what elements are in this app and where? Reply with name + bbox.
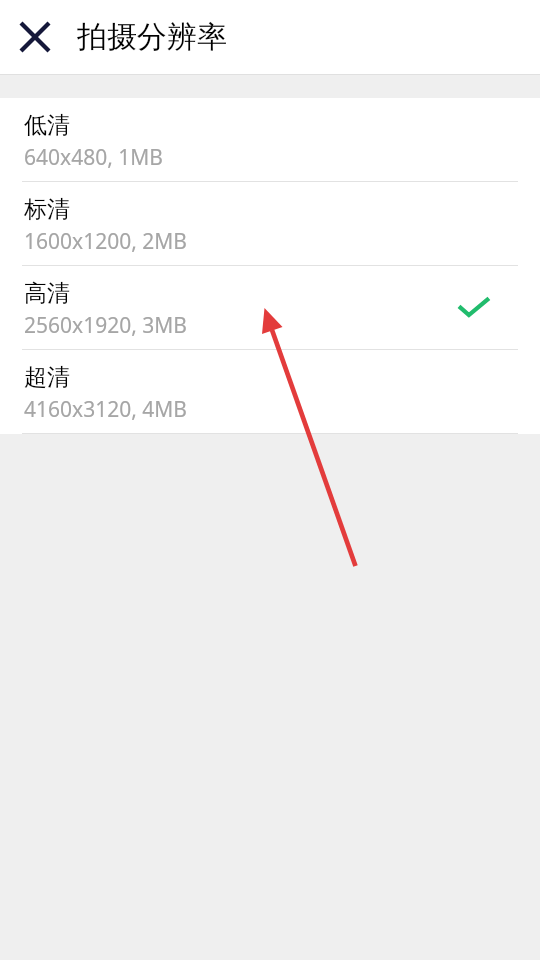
staticText: 640x480, 1MB — [24, 143, 163, 172]
staticText: 标清 — [24, 195, 70, 224]
button[interactable]: 标清 — [0, 182, 540, 265]
button[interactable]: 低清 — [0, 98, 540, 181]
staticText: 高清 — [24, 279, 70, 308]
staticText: 低清 — [24, 111, 70, 140]
staticText: 4160x3120, 4MB — [24, 395, 188, 424]
button[interactable]: 超清 — [0, 350, 540, 433]
button[interactable]: 高清 — [0, 266, 540, 349]
staticText: 2560x1920, 3MB — [24, 311, 188, 340]
staticText: 拍摄分辨率 — [77, 18, 227, 56]
staticText: 超清 — [24, 363, 70, 392]
button[interactable]: Close — [7, 9, 63, 65]
staticText: 1600x1200, 2MB — [24, 227, 188, 256]
